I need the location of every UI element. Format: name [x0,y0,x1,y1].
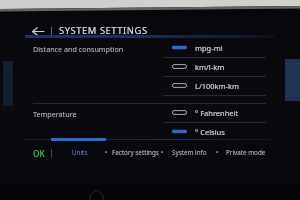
button[interactable]: ° Fahrenheit [163,103,266,122]
staticText: Distance and consumption [33,44,124,54]
staticText: | [49,24,54,36]
button[interactable]: km/l-km [163,57,266,76]
button[interactable]: mpg-mi [163,38,266,57]
staticText: L/100km-km [195,81,240,91]
staticText: Factory settings [112,148,159,157]
button[interactable]: System info [172,148,208,157]
button[interactable]: Factory settings [112,148,160,157]
button[interactable]: Units [72,148,94,157]
staticText: mpg-mi [195,43,223,53]
staticText: Private mode [226,148,266,157]
staticText: Units [72,148,88,157]
staticText: | [49,147,54,158]
staticText: • [161,148,164,157]
button[interactable]: L/100km-km [163,76,266,95]
staticText: System info [172,148,207,157]
button[interactable]: Private mode [226,148,270,157]
staticText: • [216,148,219,157]
staticText: ° Fahrenheit [195,108,239,118]
staticText: OK [33,148,45,157]
staticText: ° Celsius [195,127,225,137]
button[interactable]: OK [33,148,46,157]
staticText: Temperature [33,109,77,119]
staticText: SYSTEM SETTINGS [59,24,148,36]
staticText: km/l-km [195,62,225,72]
staticText: • [105,148,108,157]
button[interactable]: ° Celsius [163,122,266,141]
button[interactable]: Back [32,25,44,35]
